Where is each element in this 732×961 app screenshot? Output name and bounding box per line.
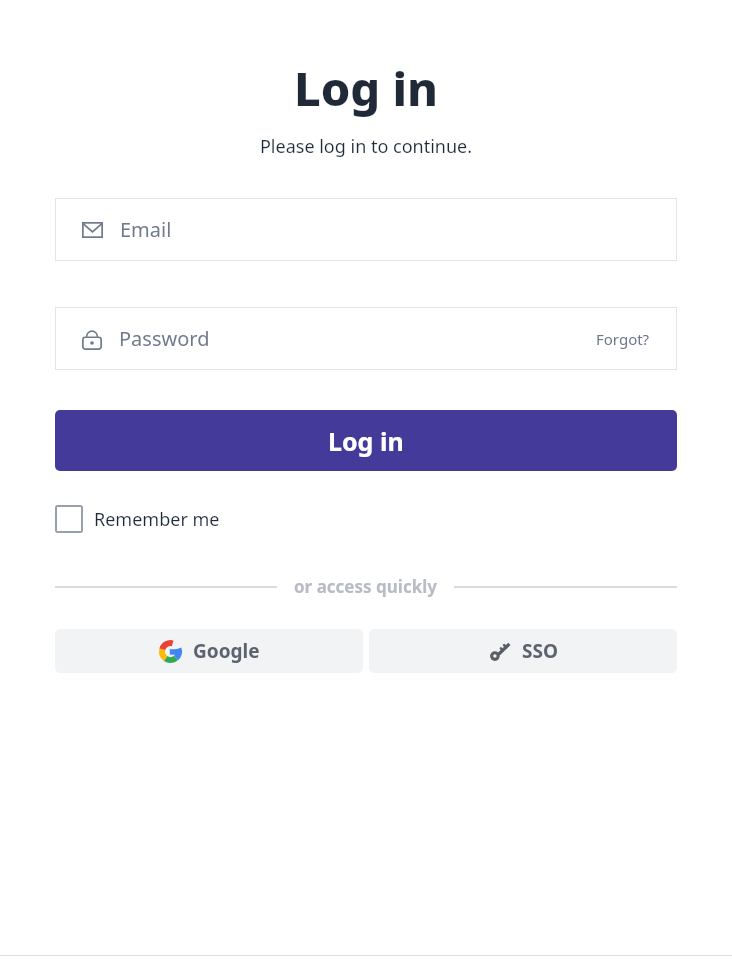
button[interactable]: Email: [55, 198, 677, 261]
staticText: Remember me: [94, 507, 220, 532]
staticText: Google: [193, 638, 260, 664]
button[interactable]: Google: [55, 629, 363, 673]
staticText: Log in: [328, 424, 404, 458]
staticText: Log in: [0, 56, 732, 120]
button[interactable]: Forgot?: [596, 329, 650, 349]
staticText: Email: [120, 216, 172, 243]
staticText: Password: [119, 325, 210, 352]
button[interactable]: Remember me: [55, 505, 220, 533]
staticText: Please log in to continue.: [0, 134, 732, 159]
button[interactable]: SSO: [369, 629, 677, 673]
staticText: Forgot?: [596, 329, 650, 349]
button[interactable]: Log in: [55, 410, 677, 471]
staticText: or access quickly: [294, 575, 437, 598]
other: Password: [82, 328, 102, 350]
staticText: SSO: [522, 638, 558, 664]
button[interactable]: Password: [55, 307, 677, 370]
other: Email: [82, 222, 103, 238]
